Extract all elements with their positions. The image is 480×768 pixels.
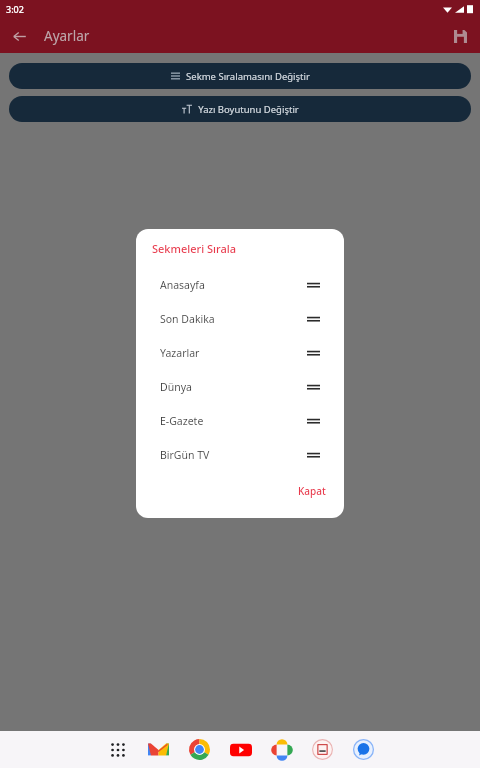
staticText: Sekme Sıralamasını Değiştir (186, 70, 310, 83)
button[interactable]: Messages (343, 731, 384, 768)
staticText: E-Gazete (160, 414, 204, 428)
staticText: Yazarlar (160, 346, 200, 360)
staticText: Kapat (298, 484, 326, 498)
staticText: Dünya (160, 380, 192, 394)
button[interactable]: Dünya (136, 370, 344, 404)
staticText: Ayarlar (44, 27, 90, 45)
button[interactable]: BirGün TV (136, 438, 344, 472)
button[interactable]: Kapat (280, 476, 344, 506)
staticText: Sekmeleri Sırala (152, 241, 237, 256)
button[interactable]: Anasayfa (136, 268, 344, 302)
staticText: BirGün TV (160, 448, 210, 462)
button[interactable]: Yazarlar (136, 336, 344, 370)
staticText: 3:02 (6, 3, 24, 15)
button[interactable]: Save (445, 21, 475, 51)
button[interactable]: Gmail (138, 731, 179, 768)
button[interactable]: Back (4, 21, 34, 51)
button[interactable]: Sekme Sıralamasını Değiştir (9, 63, 471, 89)
staticText: Yazı Boyutunu Değiştir (198, 103, 299, 116)
button[interactable]: Apps (97, 731, 138, 768)
button[interactable]: YouTube (220, 731, 261, 768)
button[interactable]: Photos (261, 731, 302, 768)
button[interactable]: Chrome (179, 731, 220, 768)
staticText: Anasayfa (160, 278, 205, 292)
button[interactable]: Yazı Boyutunu Değiştir (9, 96, 471, 122)
button[interactable]: BirGün (302, 731, 343, 768)
button[interactable]: Son Dakika (136, 302, 344, 336)
staticText: Son Dakika (160, 312, 215, 326)
button[interactable]: E-Gazete (136, 404, 344, 438)
